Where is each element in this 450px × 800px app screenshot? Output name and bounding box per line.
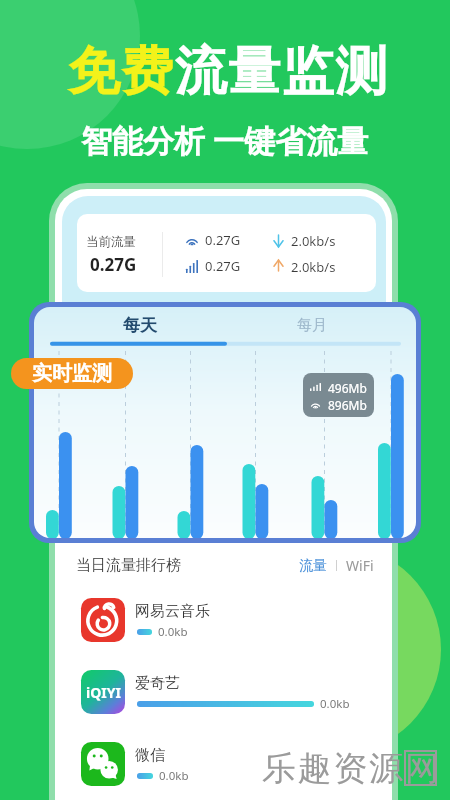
staticText: 流量监测 xyxy=(174,39,388,105)
staticText: 2.0kb/s xyxy=(291,232,336,250)
staticText: 896Mb xyxy=(328,397,367,413)
staticText: 496Mb xyxy=(328,380,367,396)
staticText: 2.0kb/s xyxy=(291,258,336,276)
staticText: 智能分析 一键省流量 xyxy=(81,119,369,161)
staticText: 免费 xyxy=(67,39,174,105)
button[interactable]: 实时监测 xyxy=(11,358,133,389)
staticText: 每月 xyxy=(297,316,327,335)
button[interactable]: 流量 xyxy=(299,557,327,575)
button[interactable]: iQIYI xyxy=(70,662,390,724)
staticText: 爱奇艺 xyxy=(135,674,180,693)
button[interactable]: WiFi xyxy=(346,556,374,575)
button[interactable]: 每月 xyxy=(269,311,354,339)
staticText: 0.0kb xyxy=(159,768,189,784)
button[interactable]: 微信 xyxy=(70,734,390,796)
staticText: 乐趣资源网 xyxy=(262,747,441,790)
staticText: 0.0kb xyxy=(320,696,350,712)
button[interactable]: 每天 xyxy=(97,311,182,339)
staticText: 当前流量 xyxy=(86,234,136,250)
staticText: iQIYI xyxy=(86,683,121,702)
staticText: 0.27G xyxy=(205,257,241,275)
button[interactable]: 网易云音乐 xyxy=(70,590,390,652)
staticText: 0.27G xyxy=(205,231,241,249)
staticText: 当日流量排行榜 xyxy=(76,556,181,575)
staticText: 网易云音乐 xyxy=(135,602,210,621)
staticText: 每天 xyxy=(123,315,157,336)
staticText: 实时监测 xyxy=(32,361,112,386)
staticText: 微信 xyxy=(135,746,165,765)
staticText: 0.27G xyxy=(90,253,137,276)
staticText: 0.0kb xyxy=(158,624,188,640)
